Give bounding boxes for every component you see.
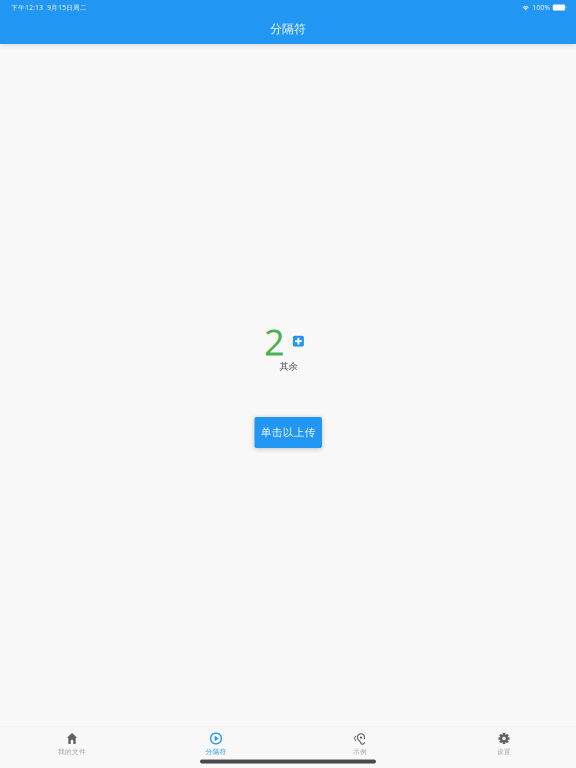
staticText: 分隔符: [205, 748, 226, 756]
button[interactable]: 设置: [432, 727, 576, 768]
staticText: 下午12:13 9月15日周二: [11, 3, 87, 12]
button[interactable]: 单击以上传: [254, 417, 322, 448]
button[interactable]: 示例: [288, 727, 432, 768]
staticText: 分隔符: [270, 22, 306, 36]
staticText: 2: [264, 318, 285, 365]
staticText: 示例: [353, 748, 367, 756]
staticText: 单击以上传: [261, 426, 316, 439]
button[interactable]: 我的文件: [0, 727, 144, 768]
button[interactable]: 分隔符: [264, 18, 312, 40]
staticText: 设置: [497, 748, 511, 756]
button[interactable]: Add: [293, 336, 304, 347]
staticText: 我的文件: [58, 748, 86, 756]
staticText: 100%: [532, 3, 550, 12]
staticText: 其余: [279, 361, 297, 372]
button[interactable]: 分隔符: [144, 727, 288, 768]
